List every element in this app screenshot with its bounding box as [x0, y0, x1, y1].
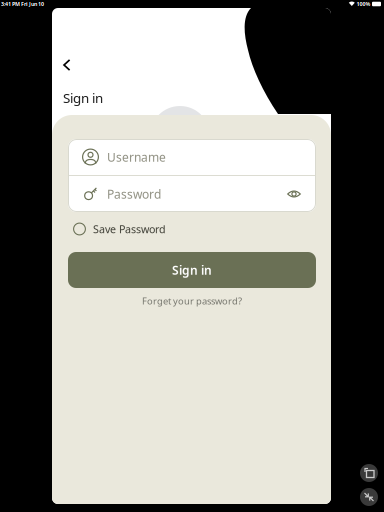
staticText: Sign in [63, 89, 103, 107]
staticText: 3:41 PM [1, 0, 20, 8]
staticText: Sign in [172, 262, 212, 278]
button[interactable]: Back [54, 52, 80, 78]
button[interactable]: Save Password [73, 218, 316, 240]
staticText: Username [107, 149, 166, 165]
staticText: Forget your password? [142, 295, 242, 307]
button[interactable]: Show password [285, 185, 303, 203]
staticText: Password [107, 186, 161, 202]
button[interactable]: Screenshot [360, 464, 378, 482]
staticText: Fri Jun 10 [20, 0, 44, 8]
button[interactable]: Sign in [68, 252, 316, 288]
button[interactable]: Forget your password? [68, 292, 316, 310]
staticText: 100% [355, 0, 370, 8]
staticText: Save Password [93, 222, 166, 236]
button[interactable]: Zoom out [360, 488, 378, 506]
